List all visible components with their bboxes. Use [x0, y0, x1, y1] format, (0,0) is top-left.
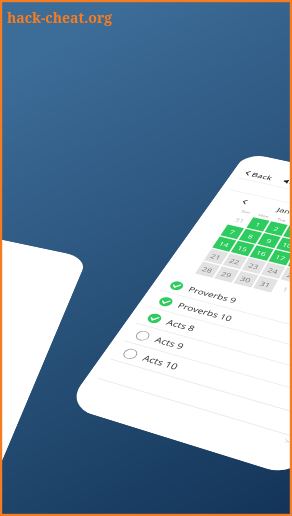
staticText: 24 [266, 266, 280, 275]
staticText: 29 [219, 269, 234, 279]
button[interactable]: 24 [261, 262, 285, 279]
staticText: 1 [254, 221, 263, 228]
staticText: Acts 9 [153, 334, 186, 352]
button[interactable]: @PursueGodBible [230, 178, 292, 226]
button[interactable]: 1 [273, 280, 292, 298]
button[interactable]: 30 [233, 271, 258, 288]
staticText: Acts 10 [140, 352, 181, 372]
other: Sound [282, 178, 292, 185]
staticText: 28 [200, 265, 215, 274]
staticText: 1 [281, 285, 291, 294]
staticText: 14 [217, 239, 231, 249]
button[interactable]: 29 [214, 266, 239, 283]
staticText: 15 [236, 244, 250, 253]
button[interactable]: 10 [276, 237, 292, 253]
button[interactable]: Back [238, 166, 292, 213]
staticText: 10 [281, 240, 292, 249]
button[interactable]: Previous month [241, 199, 249, 204]
staticText: Proverbs 9 [186, 284, 239, 305]
button[interactable]: 17 [269, 250, 292, 265]
button[interactable]: 3 [283, 225, 292, 240]
button[interactable]: 31 [228, 213, 251, 227]
staticText: > [284, 435, 292, 444]
staticText: 8 [246, 232, 256, 240]
staticText: 9 [265, 237, 274, 245]
button[interactable]: Acts 8 [136, 306, 292, 375]
button[interactable]: Acts 10 [111, 341, 292, 416]
button[interactable]: 31 [253, 276, 278, 293]
staticText: 2 [272, 225, 281, 232]
button[interactable]: 15 [231, 241, 255, 256]
button[interactable]: Proverbs 10 [148, 290, 292, 356]
button[interactable]: 7 [220, 224, 244, 239]
button[interactable]: 8 [239, 229, 262, 244]
staticText: 21 [209, 252, 223, 261]
staticText: 31 [233, 216, 247, 224]
button[interactable]: 23 [242, 258, 266, 274]
button[interactable]: 18 [288, 254, 292, 270]
staticText: 7 [228, 228, 237, 236]
button[interactable]: 16 [250, 245, 273, 261]
staticText: 17 [274, 253, 288, 262]
button[interactable]: Proverbs 9 [159, 275, 292, 338]
staticText: 31 [258, 279, 273, 289]
staticText: 22 [228, 256, 242, 266]
staticText: 30 [239, 274, 253, 284]
staticText: hack-cheat.org [7, 8, 113, 27]
button[interactable]: 2 [265, 221, 288, 236]
button[interactable]: 14 [212, 236, 236, 252]
staticText: Sun [241, 209, 251, 214]
staticText: Back [250, 171, 275, 182]
button[interactable]: 28 [195, 261, 220, 278]
button[interactable]: 9 [257, 233, 281, 248]
button[interactable]: 22 [223, 253, 247, 269]
staticText: 23 [247, 261, 261, 271]
staticText: 16 [255, 248, 269, 258]
button[interactable]: Acts 9 [124, 323, 292, 395]
staticText: Tue [276, 217, 287, 223]
staticText: Acts 8 [164, 317, 197, 334]
button[interactable]: 21 [204, 249, 228, 264]
staticText: 25 [286, 270, 292, 280]
button[interactable]: 1 [246, 217, 269, 231]
staticText: Proverbs 10 [176, 300, 235, 324]
staticText: January 2019 [275, 206, 292, 225]
button[interactable]: 25 [281, 267, 292, 284]
staticText: Mon [258, 213, 270, 219]
